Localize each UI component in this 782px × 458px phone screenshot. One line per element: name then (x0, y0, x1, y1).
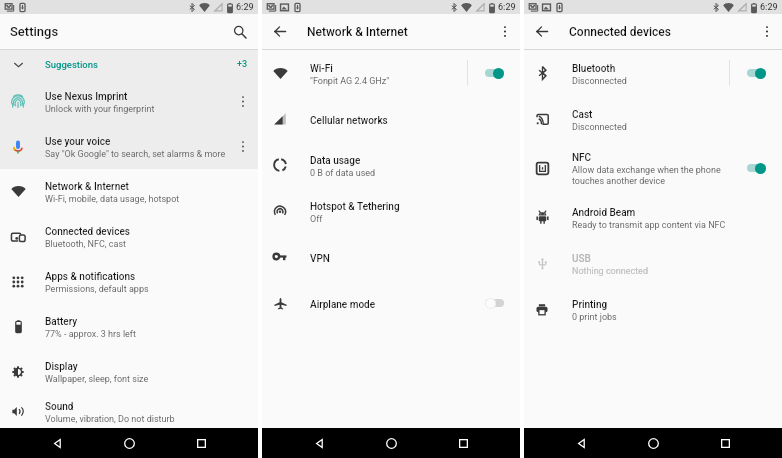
staticText: 6:29 (498, 2, 516, 13)
button[interactable]: NFC toggle (730, 142, 782, 194)
button[interactable]: Sound (0, 394, 258, 428)
staticText: Connected devices (569, 25, 671, 39)
staticText: Android Beam (572, 207, 636, 219)
button[interactable]: Bluetooth toggle (730, 50, 782, 96)
button[interactable]: Wi-Fi toggle (468, 50, 520, 96)
staticText: 0 print jobs (572, 312, 617, 323)
button[interactable]: Hotspot & Tethering (262, 188, 520, 234)
staticText: VPN (310, 253, 330, 265)
staticText: Network & Internet (307, 25, 408, 39)
staticText: Cast (572, 109, 593, 121)
staticText: Settings (10, 24, 59, 39)
button[interactable]: Wi-Fi (262, 50, 520, 96)
button[interactable]: Home (114, 428, 144, 458)
button[interactable]: Android Beam (524, 194, 782, 240)
button[interactable]: Back (304, 428, 334, 458)
staticText: Use Nexus Imprint (45, 91, 128, 103)
button[interactable]: Printing (524, 286, 782, 332)
button[interactable]: Battery (0, 304, 258, 349)
button[interactable]: VPN (262, 234, 520, 280)
button[interactable]: Back (524, 14, 560, 49)
staticText: Off (310, 214, 323, 225)
button[interactable]: Recents (710, 428, 740, 458)
button[interactable]: Apps & notifications (0, 259, 258, 304)
staticText: Disconnected (572, 76, 627, 87)
staticText: Apps & notifications (45, 271, 136, 283)
button[interactable]: Suggestions (0, 50, 258, 79)
staticText: Connected devices (45, 226, 130, 238)
staticText: Volume, vibration, Do not disturb (45, 414, 175, 425)
staticText: +3 (237, 59, 248, 70)
button[interactable]: USB (524, 240, 782, 286)
button[interactable]: Bluetooth (524, 50, 782, 96)
staticText: Network & Internet (45, 181, 129, 193)
button[interactable]: Recents (186, 428, 216, 458)
staticText: Wi-Fi (310, 63, 333, 75)
button[interactable]: Display (0, 349, 258, 394)
staticText: Say "Ok Google" to search, set alarms & … (45, 149, 226, 160)
button[interactable]: Search (222, 14, 258, 49)
button[interactable]: Airplane mode (262, 280, 520, 326)
staticText: Allow data exchange when the phone (572, 165, 721, 176)
staticText: Nothing connected (572, 266, 648, 277)
staticText: Cellular networks (310, 115, 388, 127)
button[interactable]: More options (752, 14, 782, 49)
staticText: 77% - approx. 3 hrs left (45, 329, 136, 340)
staticText: USB (572, 253, 591, 265)
button[interactable]: Data usage (262, 142, 520, 188)
staticText: 6:29 (236, 2, 254, 13)
button[interactable]: Connected devices (0, 214, 258, 259)
staticText: Bluetooth (572, 63, 616, 75)
button[interactable]: Home (638, 428, 668, 458)
button[interactable]: NFC (524, 142, 782, 194)
button[interactable]: Cellular networks (262, 96, 520, 142)
button[interactable]: More options (228, 79, 258, 124)
staticText: Data usage (310, 155, 361, 167)
staticText: Disconnected (572, 122, 627, 133)
staticText: Suggestions (45, 59, 98, 70)
staticText: Battery (45, 316, 78, 328)
staticText: Bluetooth, NFC, cast (45, 239, 127, 250)
button[interactable]: Home (376, 428, 406, 458)
staticText: Ready to transmit app content via NFC (572, 220, 726, 231)
staticText: touches another device (572, 176, 666, 187)
staticText: Printing (572, 299, 608, 311)
button[interactable]: More options (228, 124, 258, 169)
button[interactable]: Back (262, 14, 298, 49)
button[interactable]: Recents (448, 428, 478, 458)
staticText: 0 B of data used (310, 168, 376, 179)
button[interactable]: Airplane mode toggle (468, 280, 520, 326)
staticText: Display (45, 361, 78, 373)
staticText: Wallpaper, sleep, font size (45, 374, 149, 385)
staticText: Use your voice (45, 136, 111, 148)
staticText: Hotspot & Tethering (310, 201, 400, 213)
staticText: 6:29 (760, 2, 778, 13)
button[interactable]: Cast (524, 96, 782, 142)
staticText: "Fonpit AG 2.4 GHz" (310, 76, 390, 87)
button[interactable]: Back (566, 428, 596, 458)
staticText: Wi-Fi, mobile, data usage, hotspot (45, 194, 180, 205)
staticText: Airplane mode (310, 299, 376, 311)
button[interactable]: Back (42, 428, 72, 458)
button[interactable]: Network & Internet (0, 169, 258, 214)
staticText: NFC (572, 152, 592, 164)
button[interactable]: More options (490, 14, 520, 49)
staticText: Unlock with your fingerprint (45, 104, 155, 115)
staticText: Sound (45, 401, 74, 413)
button[interactable]: Use Nexus Imprint (0, 79, 258, 124)
button[interactable]: Use your voice (0, 124, 258, 169)
staticText: Permissions, default apps (45, 284, 149, 295)
